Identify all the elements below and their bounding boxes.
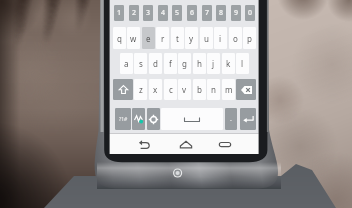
staticText: j — [212, 58, 215, 69]
staticText: i — [219, 33, 222, 44]
button[interactable]: Symbols — [115, 108, 131, 130]
staticText: k — [226, 58, 231, 69]
button[interactable]: Enter — [240, 108, 256, 130]
button[interactable]: Space — [161, 108, 223, 130]
staticText: e — [146, 33, 151, 44]
button[interactable]: c — [164, 79, 177, 100]
staticText: 7 — [205, 8, 210, 18]
button[interactable]: v — [178, 79, 191, 100]
button[interactable]: w — [127, 27, 140, 49]
button[interactable]: z — [134, 79, 147, 100]
button[interactable]: Settings — [147, 108, 160, 130]
button[interactable]: n — [207, 79, 220, 100]
staticText: 8 — [219, 8, 224, 18]
button[interactable]: m — [222, 79, 235, 100]
staticText: 6 — [190, 8, 195, 18]
staticText: v — [182, 84, 187, 95]
staticText: m — [225, 84, 233, 95]
staticText: s — [139, 58, 143, 69]
button[interactable]: d — [149, 53, 162, 74]
staticText: n — [211, 84, 216, 95]
staticText: y — [189, 33, 194, 44]
button[interactable]: 2 — [129, 5, 139, 21]
staticText: p — [247, 33, 252, 44]
button[interactable]: b — [193, 79, 206, 100]
staticText: ?1# — [119, 116, 128, 123]
button[interactable]: f — [164, 53, 177, 74]
button[interactable]: l — [236, 53, 249, 74]
button[interactable]: t — [171, 27, 184, 49]
staticText: 2 — [132, 8, 137, 18]
button[interactable]: 5 — [172, 5, 182, 21]
staticText: 5 — [175, 8, 180, 18]
button[interactable]: 9 — [231, 5, 241, 21]
button[interactable]: 7 — [202, 5, 212, 21]
button[interactable]: a — [120, 53, 133, 74]
staticText: g — [182, 58, 187, 69]
staticText: l — [241, 58, 244, 69]
button[interactable]: Shift — [113, 79, 133, 100]
button[interactable]: 8 — [216, 5, 226, 21]
button[interactable]: 6 — [187, 5, 197, 21]
button[interactable]: j — [207, 53, 220, 74]
button[interactable]: Recent apps — [213, 135, 237, 154]
button[interactable]: Backspace — [236, 79, 256, 100]
staticText: 3 — [146, 8, 151, 18]
staticText: d — [153, 58, 158, 69]
staticText: b — [197, 84, 202, 95]
button[interactable]: e — [142, 27, 155, 49]
button[interactable]: 1 — [114, 5, 124, 21]
button[interactable]: y — [185, 27, 198, 49]
staticText: t — [176, 33, 179, 44]
staticText: f — [169, 58, 172, 69]
staticText: 0 — [248, 8, 253, 18]
button[interactable]: r — [156, 27, 169, 49]
button[interactable]: o — [229, 27, 242, 49]
button[interactable]: h — [193, 53, 206, 74]
button[interactable]: k — [222, 53, 235, 74]
staticText: a — [124, 58, 129, 69]
button[interactable]: q — [113, 27, 126, 49]
staticText: z — [139, 84, 143, 95]
staticText: c — [169, 84, 173, 95]
button[interactable]: Voice input — [132, 108, 145, 130]
staticText: o — [233, 33, 238, 44]
button[interactable]: u — [200, 27, 213, 49]
staticText: . — [230, 114, 232, 124]
staticText: x — [153, 84, 158, 95]
staticText: r — [161, 33, 165, 44]
staticText: u — [204, 33, 209, 44]
button[interactable]: Back — [132, 135, 156, 154]
button[interactable]: p — [243, 27, 256, 49]
button[interactable]: i — [214, 27, 227, 49]
staticText: q — [117, 33, 122, 44]
staticText: 9 — [234, 8, 239, 18]
button[interactable]: s — [134, 53, 147, 74]
button[interactable]: g — [178, 53, 191, 74]
button[interactable]: x — [149, 79, 162, 100]
staticText: h — [197, 58, 202, 69]
staticText: 4 — [161, 8, 166, 18]
button[interactable]: Home — [174, 135, 198, 154]
button[interactable]: 4 — [158, 5, 168, 21]
button[interactable]: 0 — [245, 5, 255, 21]
staticText: 1 — [117, 8, 122, 18]
button[interactable]: Period — [225, 108, 237, 130]
staticText: w — [130, 33, 137, 44]
button[interactable]: 3 — [143, 5, 153, 21]
